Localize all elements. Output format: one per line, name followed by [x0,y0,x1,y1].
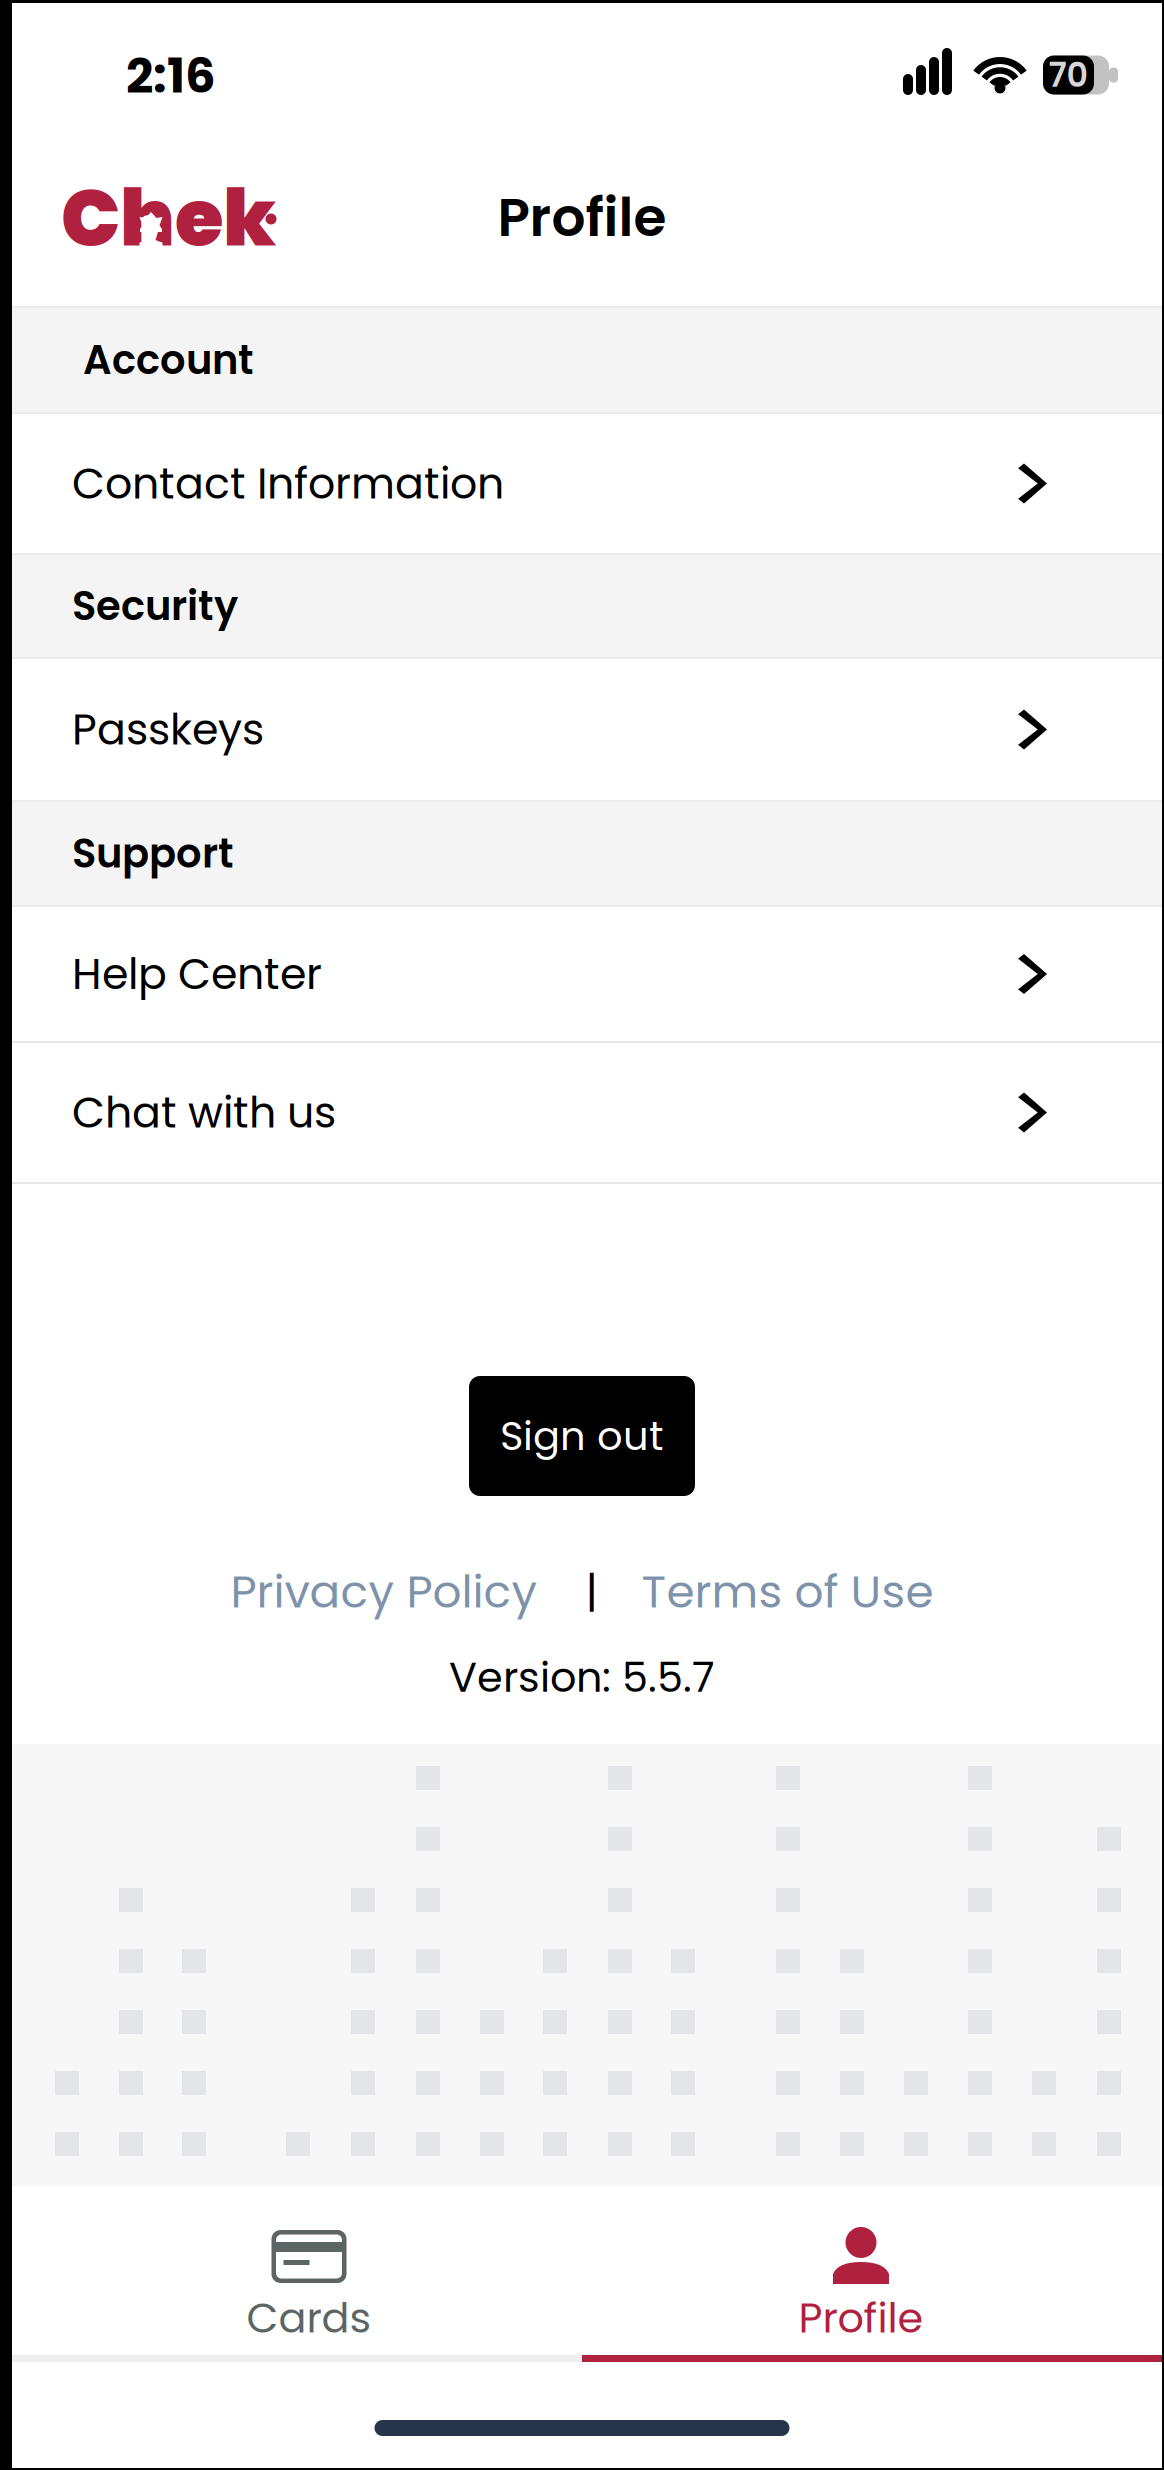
button[interactable]: Contact Information [0,414,1164,553]
button[interactable]: Profile [585,2186,1137,2355]
staticText: Account [83,332,254,388]
button[interactable]: Help Center [0,907,1164,1041]
staticText: Sign out [500,1408,664,1464]
button[interactable]: Terms of Use [641,1560,933,1623]
staticText: Privacy Policy [230,1560,537,1623]
staticText: Chat with us [72,1083,336,1142]
staticText: Contact Information [72,454,504,513]
button[interactable]: Sign out [469,1376,695,1496]
button[interactable]: Privacy Policy [230,1560,537,1623]
staticText: Terms of Use [641,1560,933,1623]
staticText: Support [72,825,234,881]
staticText: Chek [61,163,276,273]
staticText: 70 [1048,52,1088,98]
staticText: Security [72,578,238,634]
staticText: | [585,1562,597,1622]
staticText: Help Center [72,944,322,1004]
staticText: 2:16 [126,42,216,109]
staticText: Profile [798,2289,923,2347]
staticText: Passkeys [72,700,264,759]
button[interactable]: Cards [33,2186,585,2355]
button[interactable]: Chat with us [0,1043,1164,1182]
staticText: Version: 5.5.7 [449,1648,715,1706]
staticText: Cards [246,2289,371,2347]
staticText: Profile [497,180,666,255]
button[interactable]: Passkeys [0,659,1164,800]
